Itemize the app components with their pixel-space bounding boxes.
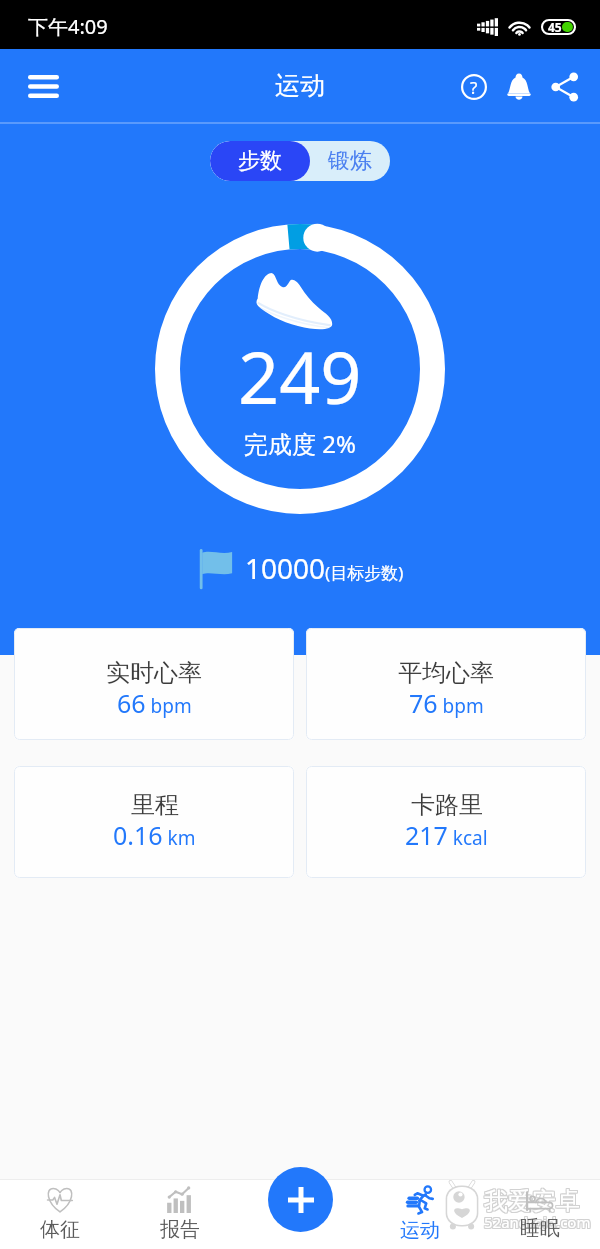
staticText: 报告 <box>160 1217 200 1242</box>
staticText: 217 kcal <box>405 818 488 852</box>
button[interactable]: 里程 <box>14 766 294 878</box>
staticText: 我爱安卓 <box>484 1186 580 1216</box>
staticText: 52android.com <box>484 1213 591 1233</box>
button[interactable]: 运动 <box>360 1179 480 1249</box>
button[interactable]: 实时心率 <box>14 628 294 740</box>
button[interactable]: Add <box>268 1167 333 1232</box>
button[interactable]: 睡眠 <box>480 1179 600 1249</box>
staticText: 步数 <box>238 147 282 175</box>
staticText: 52android.com <box>484 1212 591 1232</box>
button[interactable]: 报告 <box>120 1179 240 1249</box>
staticText: 实时心率 <box>106 658 202 688</box>
staticText: 我爱安卓 <box>483 1185 579 1215</box>
button[interactable]: Help <box>451 63 496 111</box>
staticText: 卡路里 <box>411 790 483 820</box>
button[interactable]: 体征 <box>0 1179 120 1249</box>
staticText: 平均心率 <box>398 658 494 688</box>
staticText: 运动 <box>275 70 325 101</box>
staticText: 下午4:09 <box>28 13 108 40</box>
staticText: 0.16 km <box>113 818 196 852</box>
staticText: ? <box>470 76 478 99</box>
staticText: 52android.com <box>483 1213 590 1233</box>
staticText: 我爱安卓 <box>484 1187 580 1217</box>
button[interactable]: Notifications <box>496 63 542 111</box>
button[interactable]: 卡路里 <box>306 766 586 878</box>
staticText: 249 <box>238 327 362 425</box>
staticText: 锻炼 <box>328 147 372 175</box>
staticText: 我爱安卓 <box>483 1187 579 1217</box>
staticText: 76 bpm <box>409 686 484 720</box>
staticText: 52android.com <box>485 1211 592 1231</box>
button[interactable]: Menu <box>16 64 70 108</box>
staticText: 运动 <box>400 1218 440 1243</box>
staticText: 45 <box>548 19 562 35</box>
staticText: 我爱安卓 <box>483 1186 579 1216</box>
staticText: 52android.com <box>483 1211 590 1231</box>
staticText: 体征 <box>40 1217 80 1242</box>
staticText: 我爱安卓 <box>485 1185 581 1215</box>
staticText: 52android.com <box>485 1213 592 1233</box>
staticText: 我爱安卓 <box>485 1186 581 1216</box>
staticText: 我爱安卓 <box>484 1185 580 1215</box>
staticText: 66 bpm <box>117 686 192 720</box>
staticText: 10000(目标步数) <box>245 549 404 587</box>
staticText: 52android.com <box>484 1211 591 1231</box>
button[interactable]: 步数 <box>210 141 310 181</box>
staticText: 我爱安卓 <box>485 1187 581 1217</box>
button[interactable]: 锻炼 <box>310 141 390 181</box>
staticText: 完成度 2% <box>244 427 356 460</box>
staticText: 睡眠 <box>520 1216 560 1241</box>
button[interactable]: 平均心率 <box>306 628 586 740</box>
staticText: 52android.com <box>483 1212 590 1232</box>
button[interactable]: Share <box>542 63 587 111</box>
staticText: 里程 <box>131 790 179 820</box>
staticText: 52android.com <box>485 1212 592 1232</box>
